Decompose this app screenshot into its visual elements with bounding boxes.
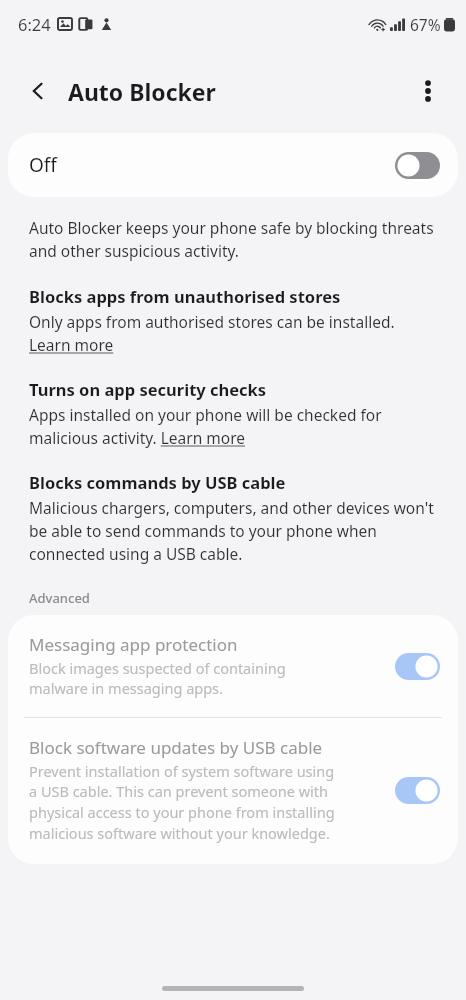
staticText: Malicious chargers, computers, and other… [29, 497, 437, 565]
staticText: Advanced [29, 589, 90, 607]
button[interactable]: Block software updates by USB cable [8, 718, 458, 864]
button[interactable]: More options [404, 67, 452, 115]
button[interactable]: Messaging app protection [8, 615, 458, 717]
staticText: Block images suspected of containing mal… [29, 658, 339, 699]
staticText: 67% [410, 14, 441, 35]
staticText: Only apps from authorised stores can be … [29, 311, 437, 356]
staticText: Prevent installation of system software … [29, 761, 339, 844]
staticText: Auto Blocker keeps your phone safe by bl… [29, 217, 437, 262]
staticText: Apps installed on your phone will be che… [29, 404, 437, 449]
button[interactable]: Off [8, 133, 458, 197]
staticText: Auto Blocker [68, 76, 216, 107]
staticText: Off [29, 152, 57, 178]
button[interactable]: Apps installed on your phone will be che… [29, 404, 437, 449]
button[interactable]: Only apps from authorised stores can be … [29, 311, 437, 356]
staticText: Blocks apps from unauthorised stores [29, 285, 341, 307]
button[interactable]: Back [14, 67, 62, 115]
button[interactable]: On [395, 653, 440, 680]
staticText: Blocks commands by USB cable [29, 471, 286, 493]
button[interactable]: Off [395, 152, 440, 179]
staticText: Messaging app protection [29, 633, 238, 656]
staticText: 6:24 [18, 13, 51, 35]
staticText: Block software updates by USB cable [29, 736, 323, 759]
button[interactable]: On [395, 777, 440, 804]
staticText: Turns on app security checks [29, 378, 267, 400]
